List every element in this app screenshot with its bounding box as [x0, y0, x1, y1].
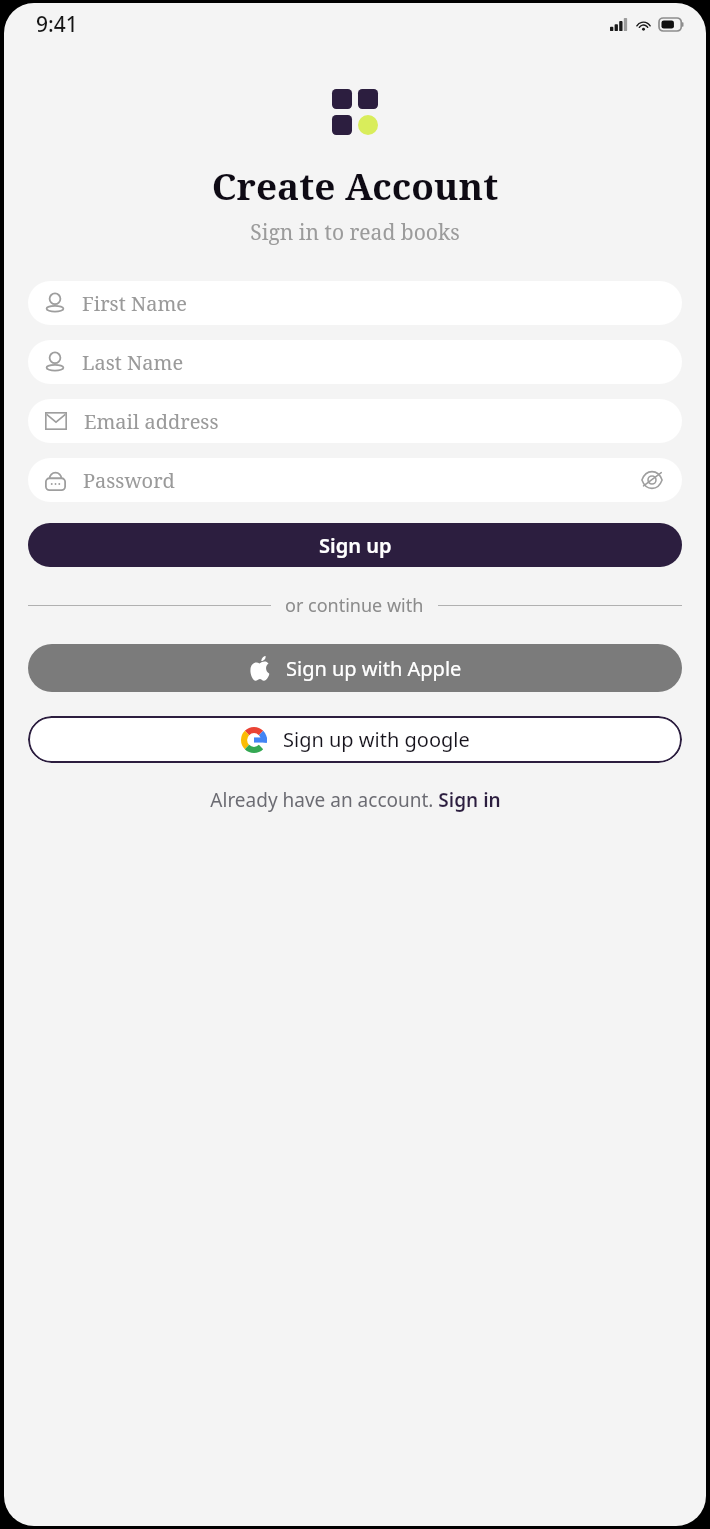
button[interactable]: Sign up	[28, 523, 682, 567]
staticText: Create Account	[4, 160, 706, 210]
staticText: Sign up	[319, 532, 392, 559]
staticText: Sign in to read books	[4, 218, 706, 247]
button[interactable]: First Name	[28, 281, 682, 325]
staticText: Already have an account. Sign in	[210, 787, 501, 813]
button[interactable]: Already have an account. Sign in	[4, 787, 706, 813]
button[interactable]: Last Name	[28, 340, 682, 384]
button[interactable]: Show password	[639, 467, 665, 493]
staticText: First Name	[82, 290, 665, 317]
staticText: Last Name	[82, 349, 665, 376]
button[interactable]: Sign up with Apple	[28, 644, 682, 692]
staticText: Email address	[84, 408, 665, 435]
staticText: or continue with	[285, 593, 424, 618]
staticText: Sign up with google	[283, 726, 470, 753]
button[interactable]: Sign up with google	[28, 716, 682, 763]
staticText: Password	[83, 467, 639, 494]
staticText: Sign up with Apple	[286, 655, 462, 682]
button[interactable]: Password	[28, 458, 682, 502]
staticText: 9:41	[36, 10, 78, 39]
button[interactable]: Email address	[28, 399, 682, 443]
